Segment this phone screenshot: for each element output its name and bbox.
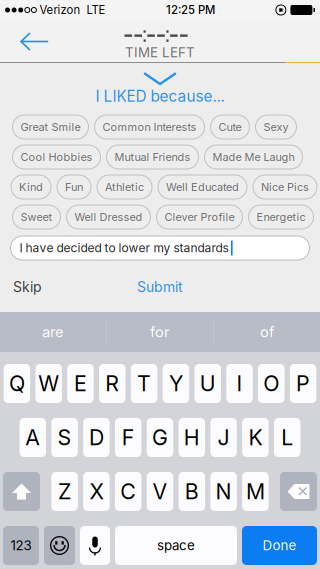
button[interactable]: I have decided to lower my standards xyxy=(10,236,309,260)
staticText: Clever Profile xyxy=(164,210,234,224)
staticText: LTE xyxy=(80,3,105,17)
button[interactable]: R xyxy=(99,364,126,403)
button[interactable]: Done xyxy=(242,526,317,565)
button[interactable]: Common Interests xyxy=(94,115,204,139)
staticText: C xyxy=(120,479,136,504)
button[interactable]: H xyxy=(179,418,205,457)
staticText: Well Dressed xyxy=(74,210,142,224)
button[interactable]: Sexy xyxy=(255,115,296,139)
button[interactable]: C xyxy=(115,472,141,511)
button[interactable]: L xyxy=(274,418,300,457)
button[interactable]: F xyxy=(115,418,141,457)
staticText: U xyxy=(200,371,216,396)
button[interactable]: D xyxy=(83,418,110,457)
button[interactable]: Fun xyxy=(57,175,91,199)
button[interactable]: W xyxy=(35,364,62,403)
staticText: Z xyxy=(58,479,71,504)
staticText: Kind xyxy=(19,180,43,194)
staticText: TIME LEFT xyxy=(125,44,195,60)
staticText: E xyxy=(74,371,87,396)
button[interactable]: V xyxy=(147,472,173,511)
button[interactable]: are xyxy=(0,312,106,352)
button[interactable]: B xyxy=(179,472,205,511)
staticText: of xyxy=(260,323,274,341)
button[interactable]: Clever Profile xyxy=(156,205,242,229)
staticText: are xyxy=(42,323,64,341)
staticText: Q xyxy=(9,371,25,396)
button[interactable]: X xyxy=(83,472,110,511)
button[interactable]: Emoji xyxy=(44,526,75,565)
staticText: Well Educated xyxy=(166,180,239,194)
staticText: S xyxy=(58,425,72,450)
button[interactable]: for xyxy=(107,312,213,352)
staticText: Athletic xyxy=(105,180,144,194)
staticText: O xyxy=(263,371,279,396)
staticText: F xyxy=(122,425,135,450)
button[interactable]: N xyxy=(210,472,237,511)
staticText: A xyxy=(25,425,40,450)
button[interactable]: J xyxy=(210,418,237,457)
button[interactable]: U xyxy=(194,364,221,403)
button[interactable]: K xyxy=(242,418,269,457)
staticText: I LIKED because... xyxy=(95,87,224,106)
button[interactable]: Back xyxy=(0,20,68,63)
staticText: Great Smile xyxy=(20,120,80,134)
staticText: Cute xyxy=(218,120,241,134)
button[interactable]: Skip xyxy=(0,262,83,312)
button[interactable]: O xyxy=(258,364,285,403)
button[interactable]: Athletic xyxy=(97,175,152,199)
staticText: Skip xyxy=(13,278,42,295)
button[interactable]: S xyxy=(51,418,78,457)
staticText: T xyxy=(137,371,151,396)
button[interactable]: Z xyxy=(51,472,78,511)
button[interactable]: Delete xyxy=(280,472,317,511)
button[interactable]: Energetic xyxy=(248,205,313,229)
button[interactable]: of xyxy=(214,312,320,352)
button[interactable]: Shift xyxy=(3,472,40,511)
button[interactable]: I xyxy=(226,364,253,403)
button[interactable]: Sweet xyxy=(12,205,60,229)
button[interactable]: Mutual Friends xyxy=(106,145,198,169)
button[interactable]: Cute xyxy=(210,115,249,139)
button[interactable]: P xyxy=(290,364,316,403)
button[interactable]: Made Me Laugh xyxy=(204,145,302,169)
staticText: K xyxy=(248,425,262,450)
button[interactable]: Well Dressed xyxy=(66,205,150,229)
button[interactable]: Well Educated xyxy=(158,175,247,199)
staticText: Energetic xyxy=(256,210,305,224)
staticText: N xyxy=(216,479,232,504)
staticText: R xyxy=(105,371,119,396)
staticText: W xyxy=(38,371,59,396)
button[interactable]: Submit xyxy=(83,262,237,312)
button[interactable]: Q xyxy=(4,364,30,403)
button[interactable]: Dictation xyxy=(80,526,110,565)
staticText: G xyxy=(152,425,168,450)
staticText: space xyxy=(157,537,195,553)
button[interactable]: T xyxy=(131,364,157,403)
staticText: B xyxy=(185,479,199,504)
staticText: V xyxy=(152,479,167,504)
button[interactable]: E xyxy=(67,364,94,403)
staticText: 123 xyxy=(10,537,31,553)
button[interactable]: Kind xyxy=(11,175,51,199)
button[interactable]: Cool Hobbies xyxy=(12,145,100,169)
button[interactable]: Y xyxy=(163,364,189,403)
button[interactable]: space xyxy=(115,526,237,565)
staticText: Cool Hobbies xyxy=(20,150,92,164)
staticText: M xyxy=(246,479,265,504)
button[interactable]: Nice Pics xyxy=(253,175,317,199)
staticText: I have decided to lower my standards xyxy=(19,241,228,255)
staticText: for xyxy=(150,323,170,341)
button[interactable]: M xyxy=(242,472,269,511)
staticText: Sexy xyxy=(263,120,288,134)
staticText: Mutual Friends xyxy=(114,150,190,164)
staticText: D xyxy=(89,425,104,450)
button[interactable]: Great Smile xyxy=(12,115,88,139)
button[interactable]: G xyxy=(147,418,173,457)
staticText: Fun xyxy=(65,180,83,194)
staticText: Nice Pics xyxy=(261,180,309,194)
staticText: Verizon xyxy=(36,3,80,17)
staticText: X xyxy=(89,479,103,504)
button[interactable]: 123 xyxy=(3,526,39,565)
button[interactable]: A xyxy=(20,418,46,457)
